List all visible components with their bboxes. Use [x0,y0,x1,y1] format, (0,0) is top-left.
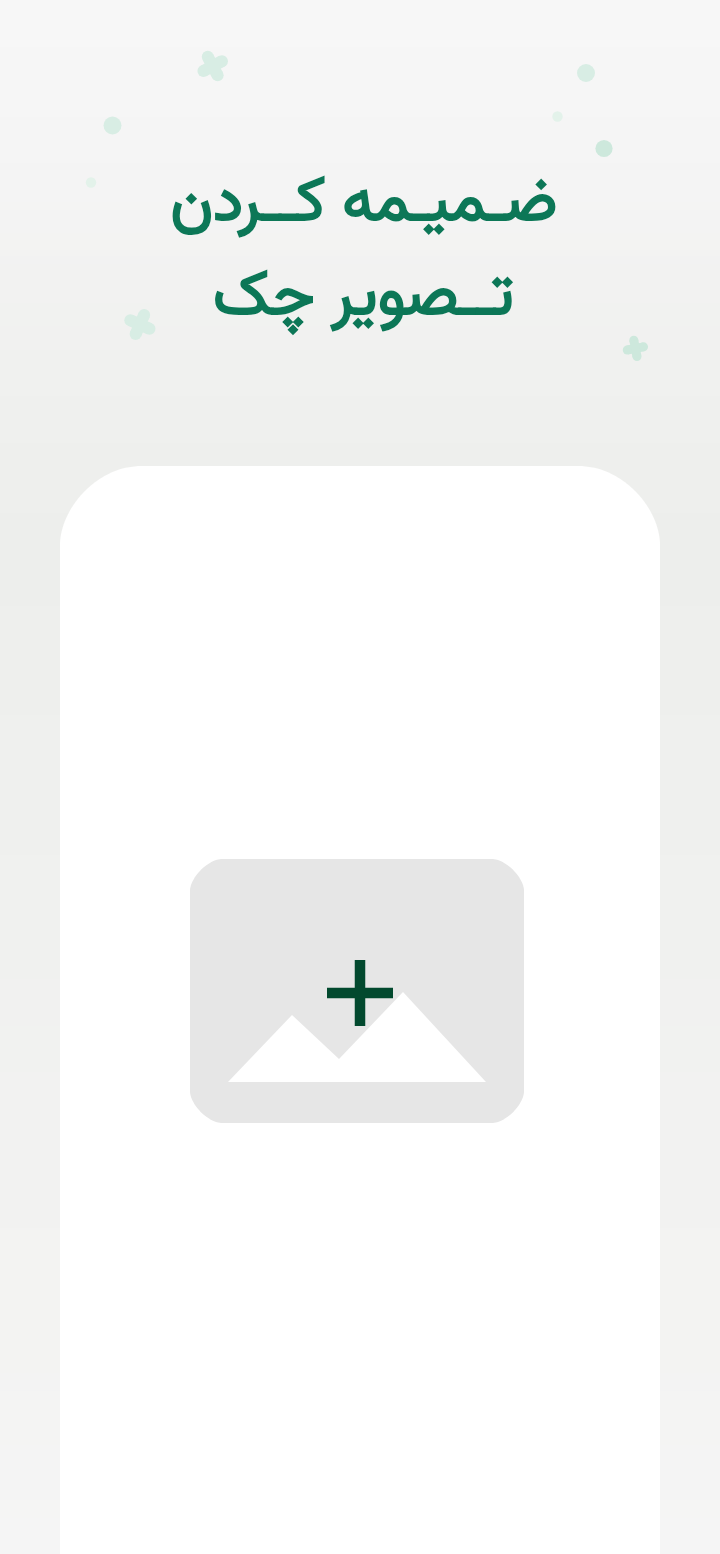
staticText: تــصویر چک [213,249,514,347]
staticText: ضـمیـمه کــردن [170,155,558,253]
button[interactable]: افزودن تصویر چک [190,859,524,1123]
